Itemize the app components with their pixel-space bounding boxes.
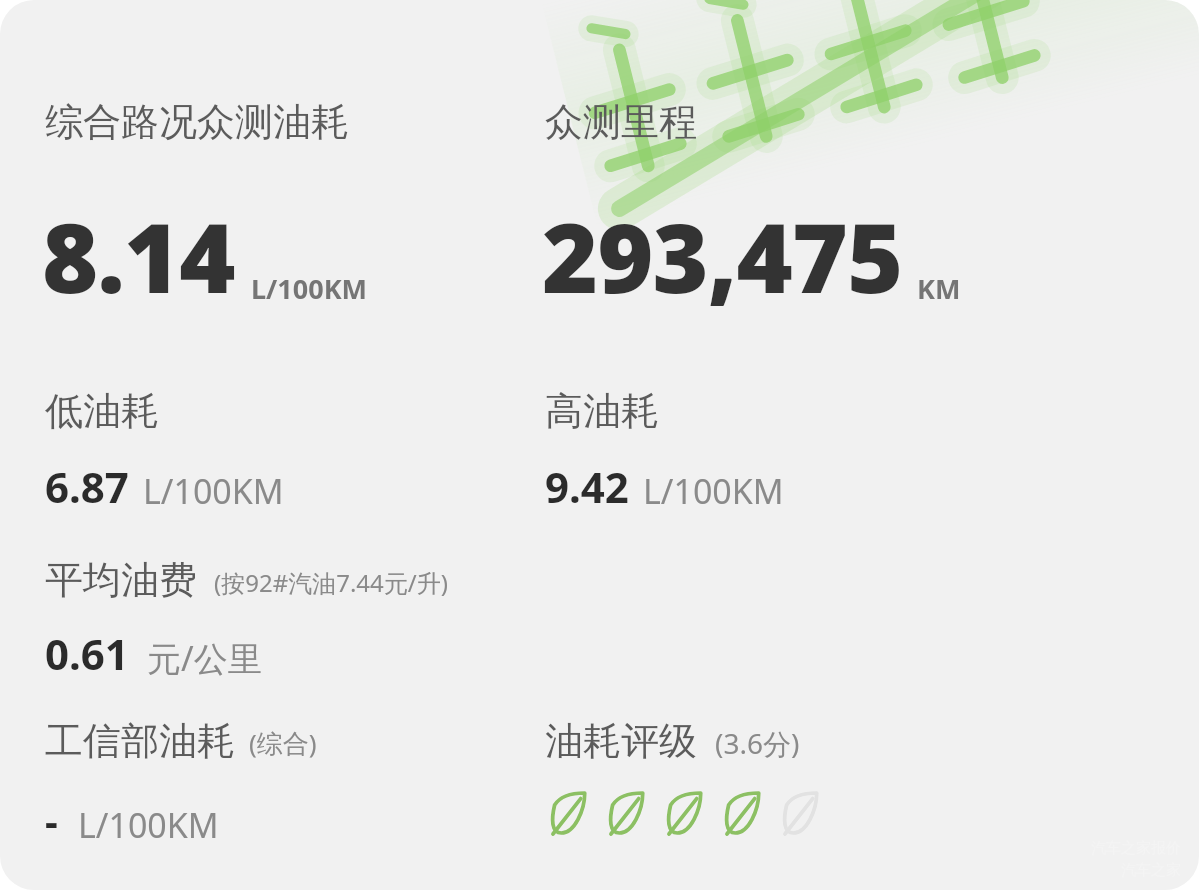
staticText: 工信部油耗 <box>45 717 235 765</box>
staticText: 9.42 <box>545 458 629 515</box>
staticText: 油耗评级 <box>545 717 697 765</box>
staticText: L/100KM <box>78 802 219 848</box>
staticText: 293,475 <box>542 190 903 321</box>
staticText: (按92#汽油7.44元/升) <box>214 566 448 599</box>
staticText: 6.87 <box>45 458 129 515</box>
button[interactable]: 众测里程 <box>545 98 697 146</box>
staticText: 元/公里 <box>147 635 262 681</box>
staticText: - <box>45 793 58 847</box>
button[interactable]: 油耗评级 <box>545 717 800 765</box>
staticText: L/100KM <box>143 468 284 514</box>
staticText: L/100KM <box>643 468 784 514</box>
staticText: 8.14 <box>42 190 235 321</box>
staticText: 0.61 <box>45 625 129 682</box>
staticText: 综合路况众测油耗 <box>45 98 349 146</box>
button[interactable]: 低油耗 <box>45 387 159 435</box>
staticText: (3.6分) <box>715 724 800 762</box>
button[interactable]: 高油耗 <box>545 387 659 435</box>
staticText: 众测里程 <box>545 98 697 146</box>
staticText: KM <box>917 270 961 307</box>
staticText: 平均油费 <box>45 556 197 604</box>
button[interactable]: 工信部油耗 <box>45 717 317 765</box>
staticText: 高油耗 <box>545 387 659 435</box>
staticText: (综合) <box>249 725 317 761</box>
staticText: 低油耗 <box>45 387 159 435</box>
button[interactable]: 综合路况众测油耗 <box>45 98 349 146</box>
button[interactable]: 平均油费 <box>45 556 448 604</box>
staticText: L/100KM <box>251 270 368 307</box>
button[interactable]: Fuel economy rating 3.6 of 5 <box>546 788 822 838</box>
